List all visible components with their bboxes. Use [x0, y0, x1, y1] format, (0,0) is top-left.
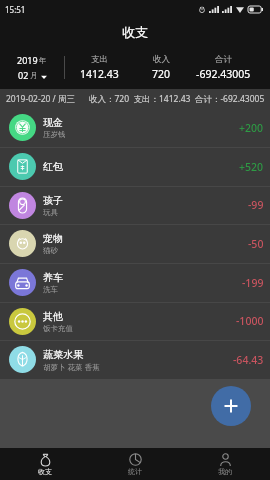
button[interactable]: 2019: [0, 54, 64, 81]
staticText: 02: [18, 69, 29, 81]
staticText: 饭卡充值: [43, 324, 73, 333]
staticText: 月: [30, 71, 38, 80]
staticText: -50: [248, 237, 264, 251]
staticText: 支出: [91, 54, 108, 65]
button[interactable]: 孩子: [0, 186, 270, 224]
staticText: 收支: [122, 24, 148, 40]
staticText: -1000: [236, 314, 264, 328]
staticText: 宠物: [43, 232, 63, 245]
button[interactable]: 红包: [0, 147, 270, 186]
button[interactable]: 我的: [180, 448, 270, 480]
button[interactable]: 收支: [0, 448, 90, 480]
button[interactable]: 统计: [90, 448, 180, 480]
staticText: 1412.43: [80, 67, 119, 81]
staticText: 现金: [43, 116, 63, 129]
staticText: 合计: [215, 54, 232, 65]
button[interactable]: 养车: [0, 263, 270, 302]
staticText: +520: [239, 160, 264, 174]
staticText: 2019: [17, 54, 38, 66]
staticText: +200: [239, 121, 264, 135]
button[interactable]: 宠物: [0, 224, 270, 263]
staticText: 15:51: [5, 4, 26, 15]
button[interactable]: 蔬菜水果: [0, 340, 270, 379]
staticText: 720: [152, 67, 171, 81]
staticText: 2019-02-20 / 周三: [6, 93, 75, 105]
staticText: -64.43: [233, 353, 264, 367]
staticText: 玩具: [43, 208, 58, 217]
staticText: 统计: [128, 467, 142, 476]
staticText: -199: [242, 276, 264, 290]
staticText: 红包: [43, 160, 63, 173]
staticText: 我的: [218, 467, 232, 476]
staticText: 蔬菜水果: [43, 348, 83, 361]
staticText: 其他: [43, 310, 63, 323]
button[interactable]: 其他: [0, 302, 270, 340]
staticText: -99: [248, 198, 264, 212]
staticText: 洗车: [43, 285, 58, 294]
button[interactable]: 现金: [0, 108, 270, 147]
staticText: 猫砂: [43, 246, 58, 255]
staticText: -692.43005: [196, 67, 251, 81]
staticText: 年: [39, 56, 47, 65]
staticText: 收入：720 支出：1412.43 合计：-692.43005: [89, 93, 265, 105]
staticText: 胡萝卜 花菜 香蕉: [43, 362, 100, 372]
staticText: 压岁钱: [43, 130, 66, 139]
button[interactable]: Add record: [211, 386, 251, 426]
staticText: 养车: [43, 271, 63, 284]
staticText: 收入: [153, 54, 170, 65]
staticText: 收支: [38, 467, 52, 476]
staticText: 孩子: [43, 194, 63, 207]
